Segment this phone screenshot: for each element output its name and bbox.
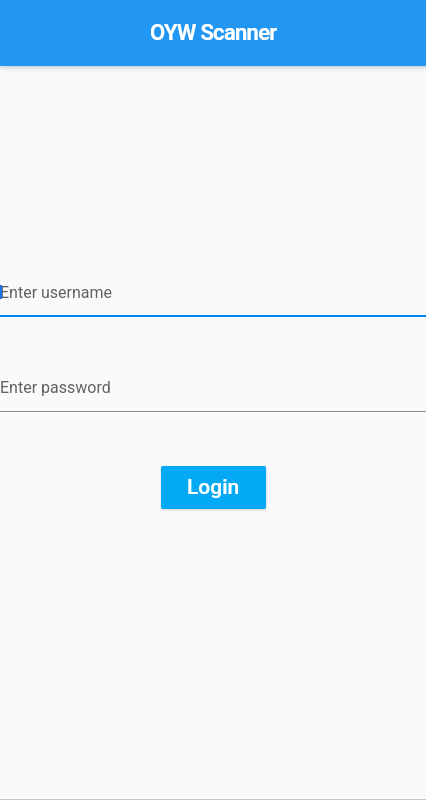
staticText: Enter username [0,283,113,302]
button[interactable]: Username input field [0,275,426,317]
staticText: Enter password [0,378,111,397]
staticText: OYW Scanner [150,20,277,46]
button[interactable]: Login [161,466,266,509]
button[interactable]: Password input field [0,370,426,412]
staticText: Login [187,475,240,500]
button[interactable]: OYW Scanner [0,0,426,66]
